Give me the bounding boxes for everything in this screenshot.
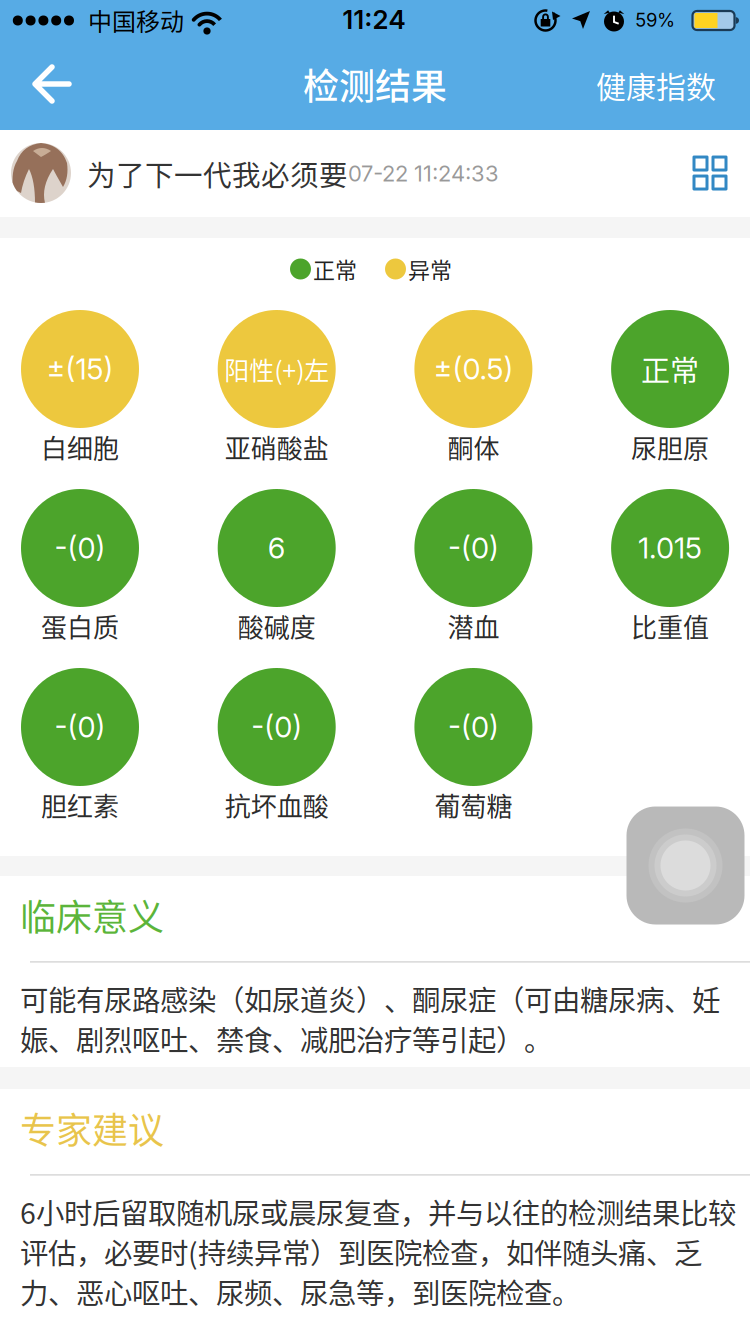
staticText: 胆红素 [41,786,119,824]
button[interactable]: Grid view [692,155,727,190]
staticText: 正常 [641,348,699,390]
button[interactable]: Back [31,64,73,104]
staticText: 评估，必要时(持续异常）到医院检查，如伴随头痛、乏 [20,1231,702,1272]
staticText: -(0) [251,709,302,745]
staticText: 健康指数 [596,63,716,107]
staticText: ±(0.5) [433,351,513,387]
staticText: 亚硝酸盐 [225,428,329,466]
staticText: 可能有尿路感染（如尿道炎）、酮尿症（可由糖尿病、妊 [20,978,720,1019]
staticText: 酸碱度 [238,607,316,645]
button[interactable]: 健康指数 [596,63,716,107]
staticText: -(0) [54,530,105,566]
staticText: -(0) [448,709,499,745]
staticText: 酮体 [447,428,499,466]
staticText: 中国移动 [88,3,184,37]
staticText: 59% [635,9,675,31]
staticText: 白细胞 [41,428,119,466]
staticText: 葡萄糖 [434,786,512,824]
staticText: ±(15) [46,351,113,387]
staticText: 1.015 [638,530,702,566]
staticText: 为了下一代我必须要 [87,153,348,194]
staticText: -(0) [54,709,105,745]
button[interactable]: AssistiveTouch [626,806,744,924]
staticText: 临床意义 [20,889,164,941]
staticText: 力、恶心呕吐、尿频、尿急等，到医院检查。 [20,1271,580,1312]
staticText: 检测结果 [303,58,447,110]
staticText: 11:24 [342,4,405,35]
staticText: 阳性(+)左 [224,351,329,387]
staticText: 尿胆原 [631,428,709,466]
staticText: 娠、剧烈呕吐、禁食、减肥治疗等引起）。 [20,1018,552,1059]
staticText: 异常 [408,253,452,285]
staticText: 07-22 11:24:33 [348,160,499,187]
staticText: 蛋白质 [41,607,119,645]
staticText: 比重值 [631,607,709,645]
staticText: 抗坏血酸 [225,786,329,824]
staticText: 潜血 [447,607,499,645]
staticText: 正常 [313,253,357,285]
staticText: 6小时后留取随机尿或晨尿复查，并与以往的检测结果比较 [20,1191,736,1232]
staticText: 专家建议 [20,1102,164,1154]
staticText: 6 [268,530,286,566]
staticText: -(0) [448,530,499,566]
